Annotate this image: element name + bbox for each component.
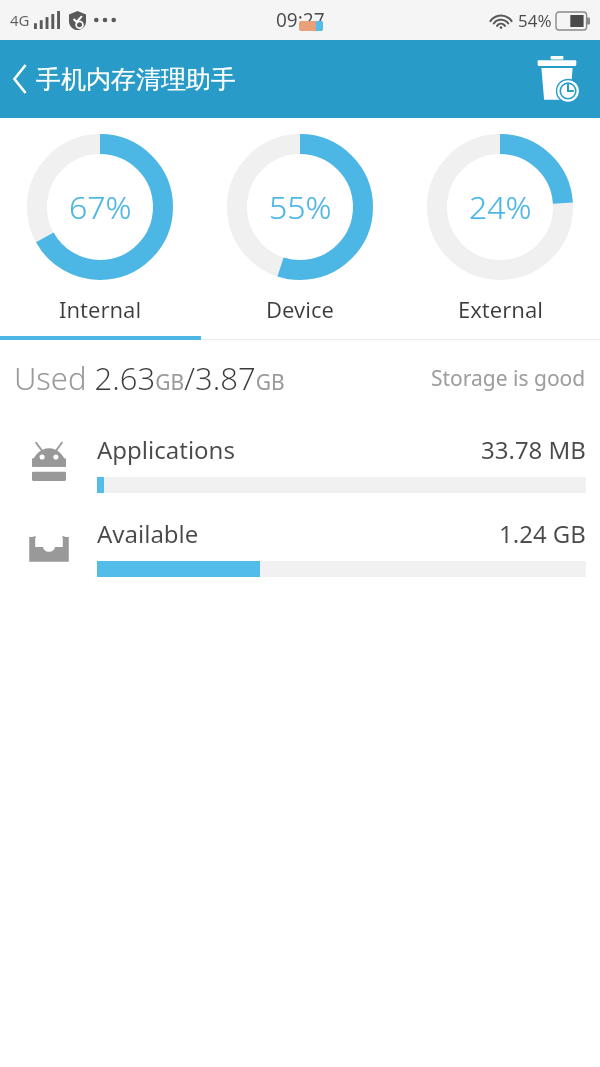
staticText: 67% (69, 185, 132, 229)
staticText: Available (97, 517, 199, 550)
button[interactable]: 24% (400, 118, 600, 336)
staticText: 54% (518, 9, 552, 32)
staticText: Applications (97, 433, 235, 466)
staticText: 手机内存清理助手 (36, 64, 236, 95)
staticText: Used 2.63GB/3.87GB (14, 357, 285, 399)
staticText: 33.78 MB (481, 433, 586, 466)
button[interactable]: Back (4, 57, 36, 101)
staticText: Device (266, 294, 334, 324)
button[interactable]: Applications (0, 430, 600, 496)
staticText: 24% (469, 185, 532, 229)
staticText: 09:27 (276, 7, 325, 33)
staticText: Internal (59, 294, 142, 324)
staticText: 4G (10, 10, 30, 30)
button[interactable]: Clear cache history (526, 48, 588, 110)
staticText: External (458, 294, 543, 324)
staticText: Storage is good (431, 364, 586, 393)
staticText: 55% (269, 185, 332, 229)
staticText: 1.24 GB (499, 517, 586, 550)
button[interactable]: Available (0, 514, 600, 580)
button[interactable]: 55% (200, 118, 400, 336)
button[interactable]: 67% (0, 118, 200, 336)
